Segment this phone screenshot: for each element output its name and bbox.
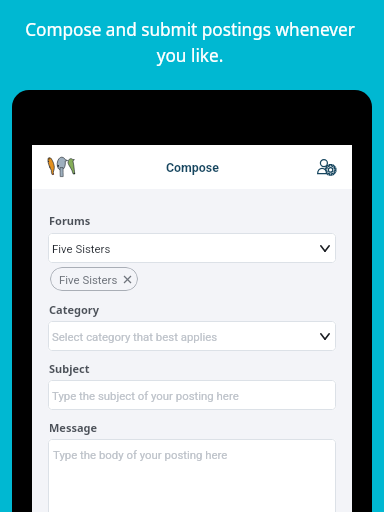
- button[interactable]: Five Sisters: [48, 233, 336, 263]
- button[interactable]: Type the body of your posting here: [48, 439, 336, 512]
- staticText: Subject: [49, 361, 90, 376]
- staticText: Message: [49, 420, 98, 435]
- staticText: Category: [49, 302, 100, 317]
- staticText: Type the subject of your posting here: [52, 389, 239, 402]
- staticText: Type the body of your posting here: [53, 448, 228, 461]
- staticText: Compose and submit postings whenever you…: [17, 18, 363, 67]
- staticText: Compose: [166, 160, 219, 175]
- button[interactable]: Account settings: [317, 159, 338, 177]
- staticText: Five Sisters: [59, 273, 118, 286]
- button[interactable]: Five Sisters: [50, 267, 138, 291]
- staticText: Forums: [49, 213, 91, 228]
- staticText: Select category that best applies: [52, 330, 218, 343]
- staticText: Five Sisters: [52, 242, 111, 255]
- button[interactable]: Home: [47, 156, 76, 178]
- button[interactable]: Type the subject of your posting here: [48, 380, 336, 410]
- button[interactable]: Select category that best applies: [48, 321, 336, 351]
